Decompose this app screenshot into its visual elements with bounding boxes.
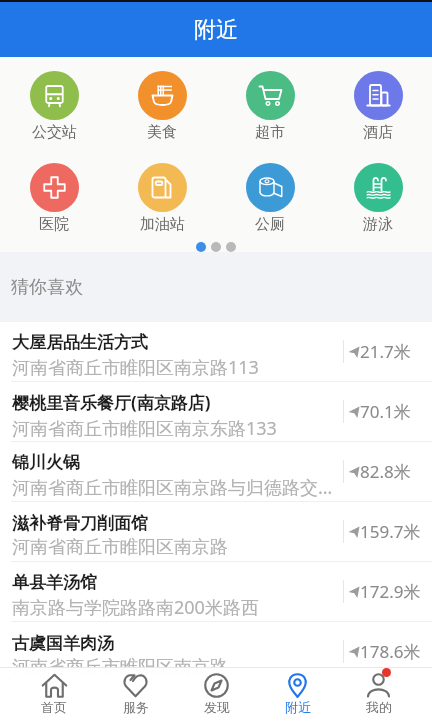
staticText: 70.1米 [360,400,411,423]
staticText: 159.7米 [360,520,421,543]
staticText: 附近 [194,16,238,44]
staticText: 单县羊汤馆 [12,572,97,593]
button[interactable]: 首页 [13,668,95,715]
button[interactable]: 医院 [0,161,108,236]
button[interactable]: 美食 [108,69,216,144]
staticText: 河南省商丘市睢阳区南京东路133 [12,416,277,441]
staticText: 172.9米 [360,580,421,603]
staticText: 82.8米 [360,460,411,483]
staticText: 公厕 [255,215,285,234]
staticText: 加油站 [140,215,185,234]
button[interactable]: 超市 [216,69,324,144]
staticText: 锦川火锅 [12,452,80,473]
button[interactable]: 发现 [176,668,257,715]
button[interactable]: 大屋居品生活方式 [0,322,432,382]
staticText: 猜你喜欢 [11,276,83,299]
staticText: 21.7米 [360,340,411,363]
staticText: 酒店 [363,123,393,142]
button[interactable]: 樱桃里音乐餐厅(南京路店) [0,382,432,442]
staticText: 服务 [123,699,149,715]
button[interactable]: 滋补脊骨刀削面馆 [0,502,432,562]
staticText: 樱桃里音乐餐厅(南京路店) [12,391,211,414]
button[interactable]: 酒店 [324,69,432,144]
button[interactable]: 服务 [95,668,176,715]
staticText: 美食 [147,123,177,142]
button[interactable]: 游泳 [324,161,432,236]
staticText: 滋补脊骨刀削面馆 [12,513,148,534]
button[interactable]: 公交站 [0,69,108,144]
staticText: 附近 [285,699,311,715]
staticText: 古虞国羊肉汤 [12,633,114,654]
button[interactable]: 加油站 [108,161,216,236]
button[interactable]: 古虞国羊肉汤 [0,622,432,682]
staticText: 公交站 [32,123,77,142]
button[interactable]: 单县羊汤馆 [0,562,432,622]
button[interactable]: 附近 [257,668,338,715]
button[interactable]: 公厕 [216,161,324,236]
staticText: 大屋居品生活方式 [12,332,148,353]
staticText: 河南省商丘市睢阳区南京路113 [12,355,259,380]
staticText: 医院 [39,215,69,234]
staticText: 超市 [255,123,285,142]
staticText: 游泳 [363,215,393,234]
staticText: 我的 [366,699,392,715]
staticText: 河南省商丘市睢阳区南京路 [12,536,228,559]
staticText: 河南省商丘市睢阳区南京路 [12,656,228,679]
staticText: 南京路与学院路路南200米路西 [12,595,259,620]
staticText: 发现 [204,699,230,715]
staticText: 178.6米 [360,640,421,663]
staticText: 河南省商丘市睢阳区南京路与归德路交… [12,475,333,500]
button[interactable]: 我的 [338,668,419,715]
staticText: 首页 [41,699,67,715]
button[interactable]: 锦川火锅 [0,442,432,502]
